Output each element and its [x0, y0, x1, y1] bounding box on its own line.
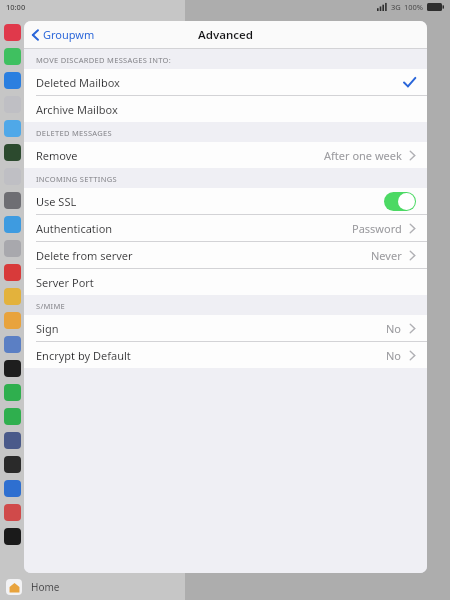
button[interactable]: Use SSL toggle: [384, 192, 416, 211]
staticText: Groupwm: [43, 27, 95, 42]
staticText: No: [386, 321, 402, 336]
staticText: Archive Mailbox: [36, 102, 118, 117]
staticText: 10:00: [6, 2, 26, 12]
staticText: Home: [31, 580, 60, 594]
staticText: Sign: [36, 321, 59, 336]
button[interactable]: Archive Mailbox: [24, 96, 427, 122]
staticText: Password: [352, 221, 402, 236]
staticText: After one week: [324, 148, 402, 163]
staticText: MOVE DISCARDED MESSAGES INTO:: [36, 55, 171, 65]
staticText: Remove: [36, 148, 78, 163]
staticText: Use SSL: [36, 194, 77, 209]
staticText: Authentication: [36, 221, 113, 236]
button[interactable]: Groupwm: [32, 21, 427, 48]
staticText: No: [386, 348, 402, 363]
staticText: Deleted Mailbox: [36, 75, 120, 90]
staticText: Server Port: [36, 275, 94, 290]
button[interactable]: Deleted Mailbox: [24, 69, 427, 96]
button[interactable]: Remove: [24, 142, 427, 168]
button[interactable]: Use SSL: [24, 188, 427, 215]
staticText: Encrypt by Default: [36, 348, 131, 363]
button[interactable]: Delete from server: [24, 242, 427, 269]
staticText: 100%: [404, 2, 424, 12]
button[interactable]: Authentication: [24, 215, 427, 242]
staticText: Delete from server: [36, 248, 133, 263]
staticText: INCOMING SETTINGS: [36, 174, 117, 184]
staticText: DELETED MESSAGES: [36, 128, 112, 138]
staticText: Never: [371, 248, 402, 263]
button[interactable]: Server Port: [24, 269, 427, 295]
staticText: Advanced: [198, 27, 253, 43]
staticText: 3G: [391, 2, 401, 12]
button[interactable]: Encrypt by Default: [24, 342, 427, 368]
staticText: S/MIME: [36, 301, 66, 311]
button[interactable]: Sign: [24, 315, 427, 342]
